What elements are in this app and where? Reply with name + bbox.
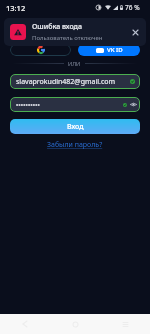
staticText: Вход <box>67 122 84 132</box>
button[interactable] <box>10 44 71 56</box>
staticText: slavaprokudin482@gmail.com <box>16 77 116 87</box>
staticText: Ошибка входа <box>32 22 82 32</box>
staticText: ИЛИ <box>68 60 81 67</box>
button[interactable]: Показать пароль <box>10 97 140 112</box>
button[interactable]: Показать пароль <box>130 101 137 108</box>
button[interactable]: slavaprokudin482@gmail.com <box>10 74 140 89</box>
staticText: 13:12 <box>6 3 26 13</box>
staticText: Забыли пароль? <box>47 140 103 150</box>
button[interactable]: Закрыть <box>130 27 140 37</box>
staticText: 76 % <box>125 3 140 12</box>
button[interactable]: Вход <box>10 119 140 134</box>
button[interactable]: VK ID <box>78 44 140 56</box>
staticText: Пользователь отключен <box>32 34 103 42</box>
button[interactable]: Забыли пароль? <box>44 139 106 151</box>
staticText: VK ID <box>107 46 123 54</box>
